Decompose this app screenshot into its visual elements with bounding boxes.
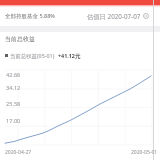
button[interactable]: 全部持股基金 5.88% [0,6,160,26]
staticText: 42.66 [6,71,21,79]
other: Info [143,13,149,19]
staticText: 2020-04-27 [5,149,32,156]
button[interactable]: 当前总收益 [5,35,35,43]
staticText: 2020-05-01 [131,149,158,156]
staticText: 17.00 [6,117,21,125]
staticText: 当前总收益(05-01) [10,52,55,59]
staticText: 全部持股基金 5.88% [5,12,55,20]
staticText: 25.58 [6,100,21,108]
staticText: 当前总收益 [5,35,35,43]
staticText: +41.12元 [58,52,81,59]
staticText: 估值日 2020-07-07 [87,12,141,21]
staticText: 34.12 [6,84,21,92]
